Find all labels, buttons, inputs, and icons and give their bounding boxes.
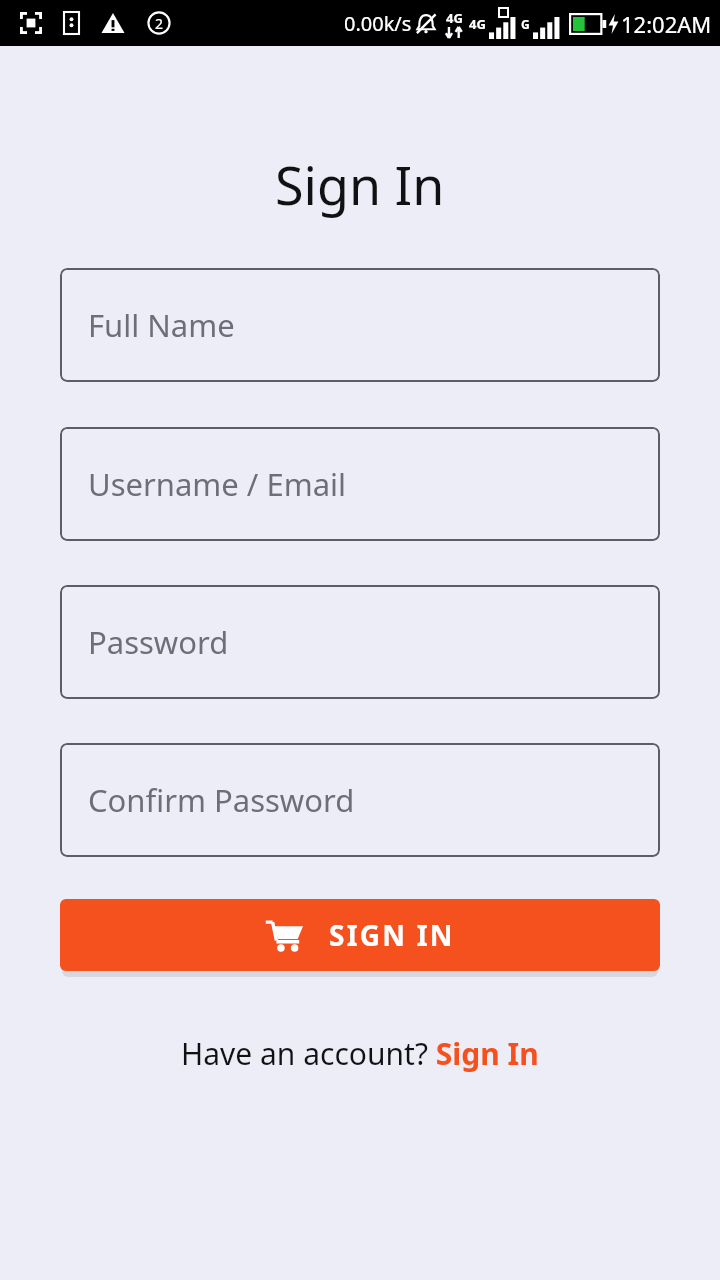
staticText: Username / Email <box>88 463 347 505</box>
staticText: Password <box>88 621 229 663</box>
button[interactable]: Have an account? Sign In <box>181 1033 539 1074</box>
staticText: Confirm Password <box>88 779 355 821</box>
staticText: 12:02AM <box>621 9 712 39</box>
staticText: Sign In <box>275 149 445 220</box>
button[interactable]: Full Name <box>60 268 660 382</box>
button[interactable]: Username / Email <box>60 427 660 541</box>
button[interactable]: SIGN IN <box>60 899 660 971</box>
staticText: 4G <box>446 9 463 27</box>
staticText: Full Name <box>88 304 235 346</box>
staticText: G <box>521 16 530 32</box>
button[interactable]: Confirm Password <box>60 743 660 857</box>
button[interactable]: Password <box>60 585 660 699</box>
staticText: 4G <box>469 15 486 33</box>
staticText: 2 <box>155 14 164 33</box>
staticText: 0.00k/s <box>344 10 412 37</box>
staticText: SIGN IN <box>329 916 455 954</box>
staticText: Have an account? Sign In <box>181 1033 539 1074</box>
